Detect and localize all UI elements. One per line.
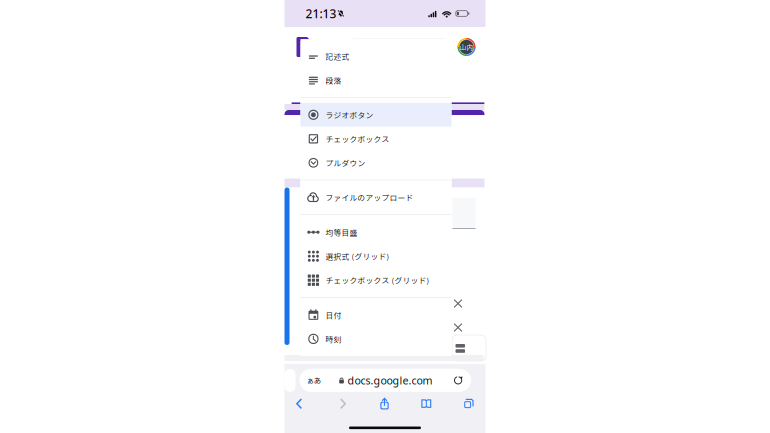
staticText: ラジオボタン bbox=[325, 109, 373, 120]
button[interactable]: 段落 bbox=[300, 68, 451, 92]
button[interactable]: 選択式 (グリッド) bbox=[300, 244, 451, 268]
staticText: ぁあ bbox=[306, 375, 320, 386]
button[interactable]: 均等目盛 bbox=[300, 220, 451, 244]
staticText: 21:13 bbox=[305, 5, 336, 21]
button[interactable]: ラジオボタン bbox=[300, 103, 451, 127]
staticText: チェックボックス bbox=[325, 133, 389, 144]
staticText: 時刻 bbox=[325, 333, 341, 344]
staticText: 日付 bbox=[325, 309, 341, 320]
button[interactable]: 記述式 bbox=[300, 44, 451, 68]
button[interactable]: ファイルのアップロード bbox=[300, 185, 451, 209]
button[interactable]: ぁあ bbox=[299, 369, 471, 392]
staticText: 山内 bbox=[459, 42, 473, 52]
button[interactable]: プルダウン bbox=[300, 151, 451, 175]
button[interactable]: Back bbox=[287, 393, 311, 415]
button[interactable]: Share bbox=[372, 393, 396, 415]
button[interactable]: Tabs bbox=[457, 393, 481, 415]
button[interactable]: 時刻 bbox=[300, 327, 451, 351]
staticText: プルダウン bbox=[325, 157, 365, 168]
staticText: チェックボックス (グリッド) bbox=[325, 275, 429, 286]
button[interactable]: チェックボックス (グリッド) bbox=[300, 268, 451, 292]
button[interactable]: チェックボックス bbox=[300, 127, 451, 151]
staticText: 均等目盛 bbox=[325, 227, 357, 238]
button[interactable]: Bookmarks bbox=[414, 393, 438, 415]
staticText: 段落 bbox=[325, 74, 341, 86]
button[interactable]: 日付 bbox=[300, 303, 451, 327]
staticText: docs.google.com bbox=[348, 373, 433, 387]
staticText: ファイルのアップロード bbox=[325, 192, 413, 203]
staticText: 記述式 bbox=[325, 50, 349, 62]
staticText: 選択式 (グリッド) bbox=[325, 251, 389, 262]
button[interactable]: Forward bbox=[331, 393, 355, 415]
